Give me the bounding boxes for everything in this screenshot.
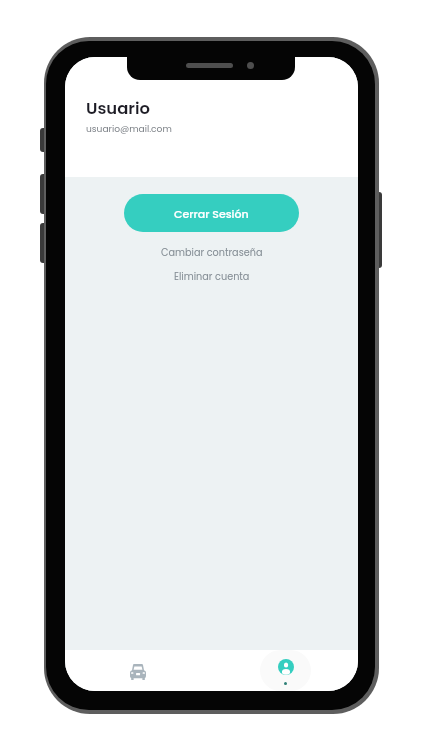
- staticText: Cerrar Sesión: [174, 206, 249, 221]
- staticText: usuario@mail.com: [86, 122, 172, 135]
- button[interactable]: Cerrar Sesión: [124, 194, 299, 232]
- button[interactable]: Vehículos: [65, 650, 211, 691]
- staticText: Cambiar contraseña: [161, 246, 263, 260]
- button[interactable]: Cambiar contraseña: [65, 242, 358, 264]
- button[interactable]: Perfil: [211, 650, 358, 691]
- staticText: Usuario: [86, 97, 150, 120]
- button[interactable]: Eliminar cuenta: [65, 266, 358, 288]
- staticText: Eliminar cuenta: [174, 270, 250, 284]
